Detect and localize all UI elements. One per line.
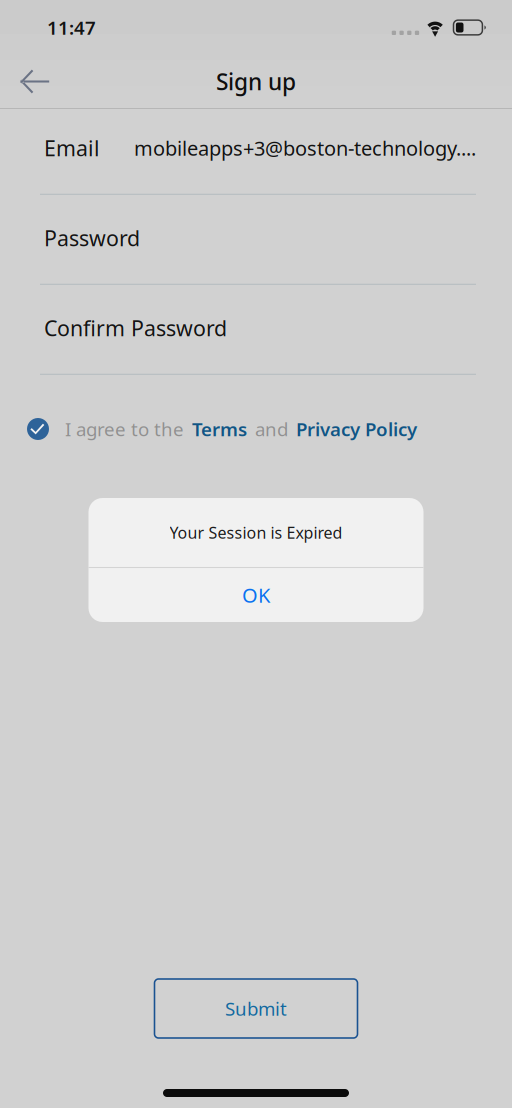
- staticText: Email: [44, 134, 100, 162]
- button[interactable]: Password: [0, 195, 512, 285]
- button[interactable]: Privacy Policy: [296, 417, 417, 441]
- staticText: I agree to the: [65, 417, 184, 441]
- staticText: Submit: [225, 996, 287, 1021]
- staticText: Password: [44, 224, 140, 252]
- button[interactable]: Confirm Password: [0, 285, 512, 375]
- button[interactable]: Back: [0, 54, 70, 108]
- staticText: and: [255, 417, 288, 441]
- staticText: Sign up: [216, 66, 296, 96]
- staticText: Confirm Password: [44, 314, 227, 342]
- staticText: Privacy Policy: [296, 417, 417, 441]
- staticText: OK: [242, 582, 270, 608]
- button[interactable]: OK: [89, 568, 423, 622]
- staticText: Your Session is Expired: [169, 522, 342, 543]
- button[interactable]: Email: [0, 109, 512, 195]
- staticText: Terms: [192, 417, 247, 441]
- button[interactable]: Submit: [154, 979, 357, 1038]
- button[interactable]: Terms: [192, 417, 247, 441]
- staticText: mobileapps+3@boston-technology....: [134, 135, 476, 161]
- button[interactable]: I agree: [23, 414, 53, 444]
- staticText: 11:47: [47, 15, 96, 40]
